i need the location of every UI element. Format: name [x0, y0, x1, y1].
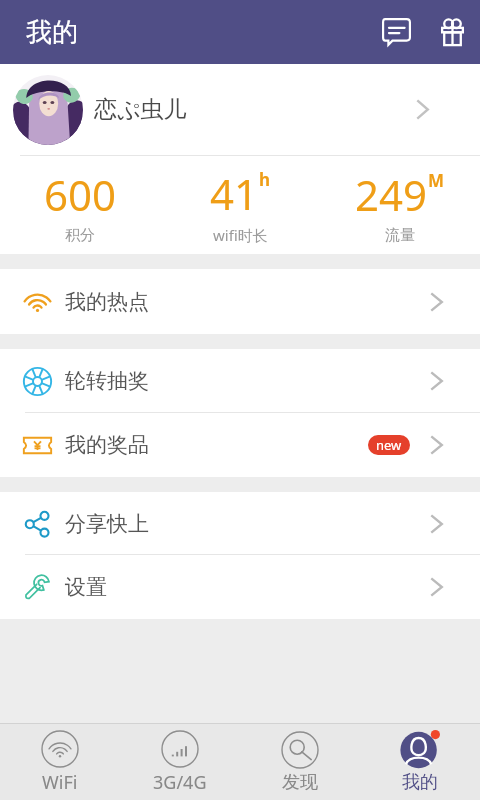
- button[interactable]: 轮转抽奖: [0, 349, 480, 413]
- button[interactable]: Messages: [368, 0, 424, 64]
- staticText: 我的热点: [65, 289, 149, 315]
- staticText: 600: [44, 166, 117, 223]
- button[interactable]: 分享快上: [0, 492, 480, 555]
- button[interactable]: 我的奖品: [0, 413, 480, 477]
- button[interactable]: 设置: [0, 555, 480, 619]
- button[interactable]: 发现: [240, 724, 360, 800]
- staticText: M: [428, 169, 445, 192]
- staticText: 41: [210, 165, 259, 222]
- staticText: 249: [355, 166, 428, 223]
- button[interactable]: 恋ぷ虫儿: [0, 64, 480, 155]
- staticText: 发现: [282, 771, 318, 794]
- staticText: 轮转抽奖: [65, 368, 149, 394]
- staticText: 设置: [65, 574, 107, 600]
- staticText: wifi时长: [213, 225, 268, 245]
- button[interactable]: 249: [320, 156, 480, 254]
- staticText: WiFi: [42, 770, 78, 795]
- staticText: 分享快上: [65, 511, 149, 537]
- staticText: 流量: [385, 226, 415, 245]
- button[interactable]: 我的: [360, 724, 480, 800]
- staticText: 3G/4G: [153, 770, 207, 795]
- staticText: 我的: [26, 16, 78, 49]
- button[interactable]: Gifts: [424, 0, 480, 64]
- staticText: 恋ぷ虫儿: [94, 95, 187, 124]
- staticText: new: [376, 436, 402, 454]
- staticText: 积分: [65, 226, 95, 245]
- button[interactable]: 600: [0, 156, 160, 254]
- button[interactable]: 3G/4G: [120, 724, 240, 800]
- button[interactable]: 我的热点: [0, 269, 480, 334]
- staticText: 我的奖品: [65, 432, 149, 458]
- staticText: h: [259, 168, 271, 191]
- staticText: 我的: [402, 771, 438, 794]
- button[interactable]: 41: [160, 156, 320, 254]
- button[interactable]: WiFi: [0, 724, 120, 800]
